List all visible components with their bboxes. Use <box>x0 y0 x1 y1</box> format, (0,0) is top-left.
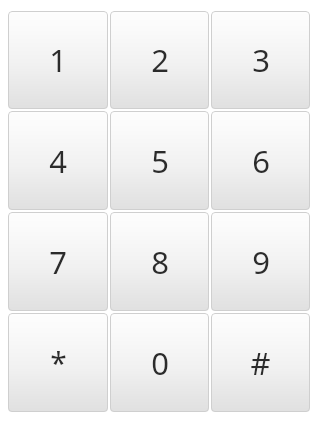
staticText: 1 <box>49 39 67 81</box>
button[interactable]: 4 <box>8 111 108 210</box>
button[interactable]: * <box>8 313 108 412</box>
staticText: 3 <box>252 39 270 81</box>
staticText: * <box>50 342 67 383</box>
staticText: 0 <box>151 342 169 384</box>
button[interactable]: 1 <box>8 11 108 109</box>
button[interactable]: 6 <box>211 111 310 210</box>
button[interactable]: 8 <box>110 212 209 311</box>
button[interactable]: 9 <box>211 212 310 311</box>
button[interactable]: 0 <box>110 313 209 412</box>
button[interactable]: 2 <box>110 11 209 109</box>
staticText: 5 <box>151 140 169 182</box>
button[interactable]: 5 <box>110 111 209 210</box>
button[interactable]: 3 <box>211 11 310 109</box>
staticText: 4 <box>49 140 67 182</box>
staticText: 7 <box>49 241 67 283</box>
button[interactable]: # <box>211 313 310 412</box>
staticText: 6 <box>252 140 270 182</box>
staticText: 9 <box>252 241 270 283</box>
staticText: 2 <box>151 39 169 81</box>
staticText: 8 <box>151 241 169 283</box>
button[interactable]: 7 <box>8 212 108 311</box>
staticText: # <box>250 342 271 384</box>
